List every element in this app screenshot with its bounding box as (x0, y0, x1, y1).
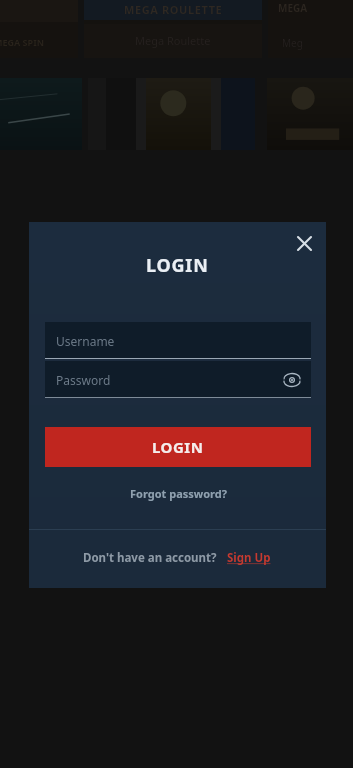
button[interactable]: Forgot password? (124, 484, 233, 503)
staticText: Username (56, 333, 115, 349)
staticText: Forgot password? (130, 486, 227, 501)
staticText: Password (56, 372, 111, 388)
button[interactable]: Password (45, 361, 311, 398)
staticText: Mega Roulette (135, 33, 211, 48)
staticText: Don't have an account? (83, 550, 217, 566)
button[interactable]: Sign Up (225, 549, 273, 567)
button[interactable]: Username (45, 322, 311, 359)
staticText: MEGA (278, 1, 308, 15)
staticText: Meg (282, 36, 303, 50)
staticText: LOGIN (146, 253, 209, 278)
button[interactable]: LOGIN (45, 427, 311, 467)
staticText: LOGIN (152, 437, 204, 457)
button[interactable]: Close (288, 227, 320, 259)
staticText: Sign Up (227, 550, 271, 566)
staticText: MEGA ROULETTE (124, 2, 223, 17)
button[interactable]: Show password (277, 365, 307, 395)
staticText: MEGA SPIN (0, 36, 44, 48)
